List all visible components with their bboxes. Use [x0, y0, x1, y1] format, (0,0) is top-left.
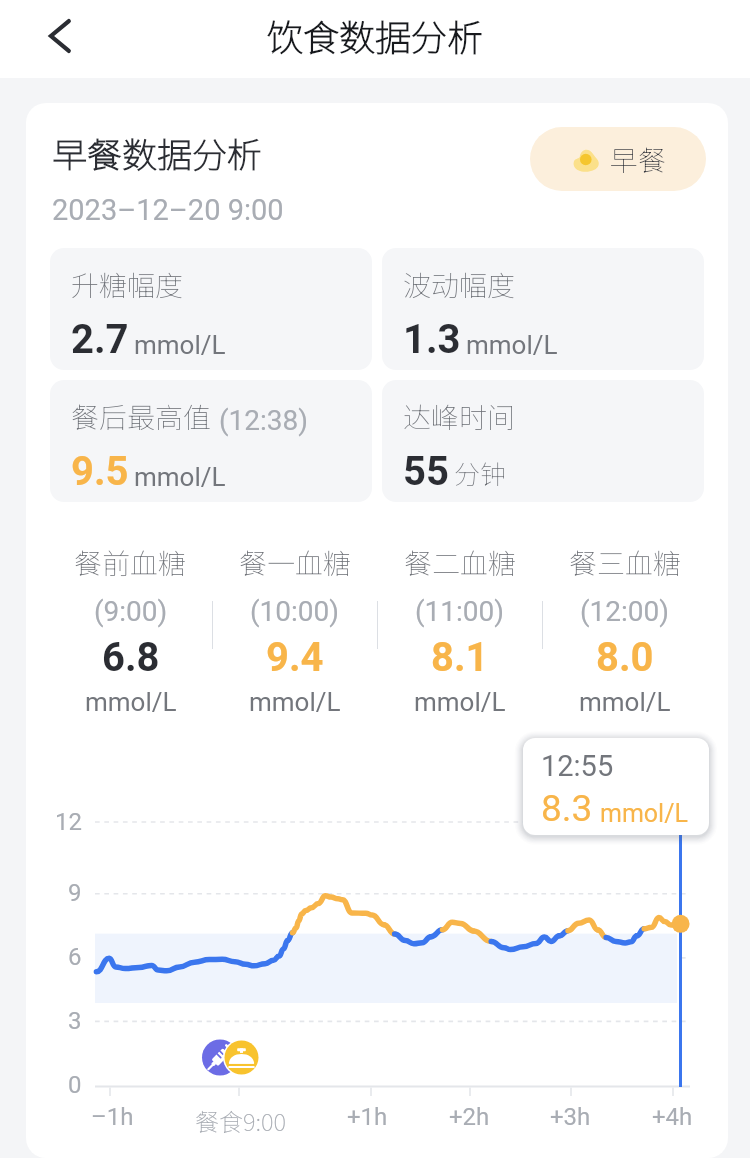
staticText: 8.0 — [596, 634, 654, 681]
staticText: 0 — [68, 1071, 82, 1099]
staticText: 升糖幅度 — [71, 264, 184, 305]
staticText: 9.4 — [266, 634, 324, 681]
staticText: (12:00) — [580, 595, 670, 628]
staticText: 餐前血糖 — [74, 542, 187, 583]
button[interactable]: 升糖幅度 — [50, 248, 372, 370]
staticText: 6.8 — [102, 634, 160, 681]
staticText: 1.3 — [403, 316, 461, 363]
staticText: (12:38) — [212, 404, 309, 437]
staticText: +2h — [449, 1103, 490, 1131]
button[interactable]: 餐一血糖 — [213, 542, 377, 717]
staticText: mmol/L — [85, 687, 177, 717]
button[interactable]: 餐后最高值 — [50, 380, 372, 502]
staticText: 达峰时间 — [403, 396, 516, 437]
staticText: (10:00) — [250, 595, 340, 628]
staticText: 饮食数据分析 — [267, 9, 484, 61]
button[interactable]: 早餐 — [530, 127, 706, 191]
staticText: 55 — [403, 448, 449, 495]
staticText: mmol/L — [134, 330, 226, 360]
button[interactable]: 达峰时间 — [382, 380, 704, 502]
staticText: 波动幅度 — [403, 264, 516, 305]
staticText: 8.1 — [431, 634, 489, 681]
button[interactable]: Back — [37, 11, 87, 61]
staticText: 8.3 — [541, 787, 593, 830]
staticText: mmol/L — [466, 330, 558, 360]
staticText: mmol/L — [414, 687, 506, 717]
button[interactable]: 餐前血糖 — [49, 542, 212, 717]
staticText: 3 — [68, 1007, 82, 1035]
staticText: mmol/L — [600, 799, 688, 828]
button[interactable]: 餐三血糖 — [543, 542, 707, 717]
staticText: 分钟 — [454, 454, 507, 492]
staticText: 餐食9:00 — [195, 1103, 287, 1138]
staticText: 餐一血糖 — [239, 542, 352, 583]
staticText: 2023–12–20 9:00 — [52, 193, 284, 227]
staticText: 9 — [68, 879, 82, 907]
staticText: 6 — [68, 943, 82, 971]
button[interactable]: 餐二血糖 — [378, 542, 542, 717]
staticText: –1h — [91, 1103, 134, 1131]
staticText: 2.7 — [71, 316, 129, 363]
staticText: mmol/L — [134, 462, 226, 492]
staticText: 餐二血糖 — [404, 542, 517, 583]
staticText: 9.5 — [71, 448, 129, 495]
button[interactable]: 12:55 — [523, 738, 709, 835]
staticText: 早餐数据分析 — [52, 127, 263, 178]
staticText: +1h — [347, 1103, 388, 1131]
staticText: mmol/L — [249, 687, 341, 717]
staticText: +3h — [550, 1103, 591, 1131]
staticText: 早餐 — [610, 139, 667, 180]
staticText: 12:55 — [541, 749, 614, 783]
staticText: 餐后最高值 — [71, 396, 212, 437]
staticText: 餐三血糖 — [569, 542, 682, 583]
staticText: mmol/L — [579, 687, 671, 717]
button[interactable]: 波动幅度 — [382, 248, 704, 370]
staticText: (11:00) — [415, 595, 505, 628]
staticText: +4h — [652, 1103, 693, 1131]
staticText: (9:00) — [94, 595, 168, 628]
staticText: 12 — [55, 808, 82, 836]
